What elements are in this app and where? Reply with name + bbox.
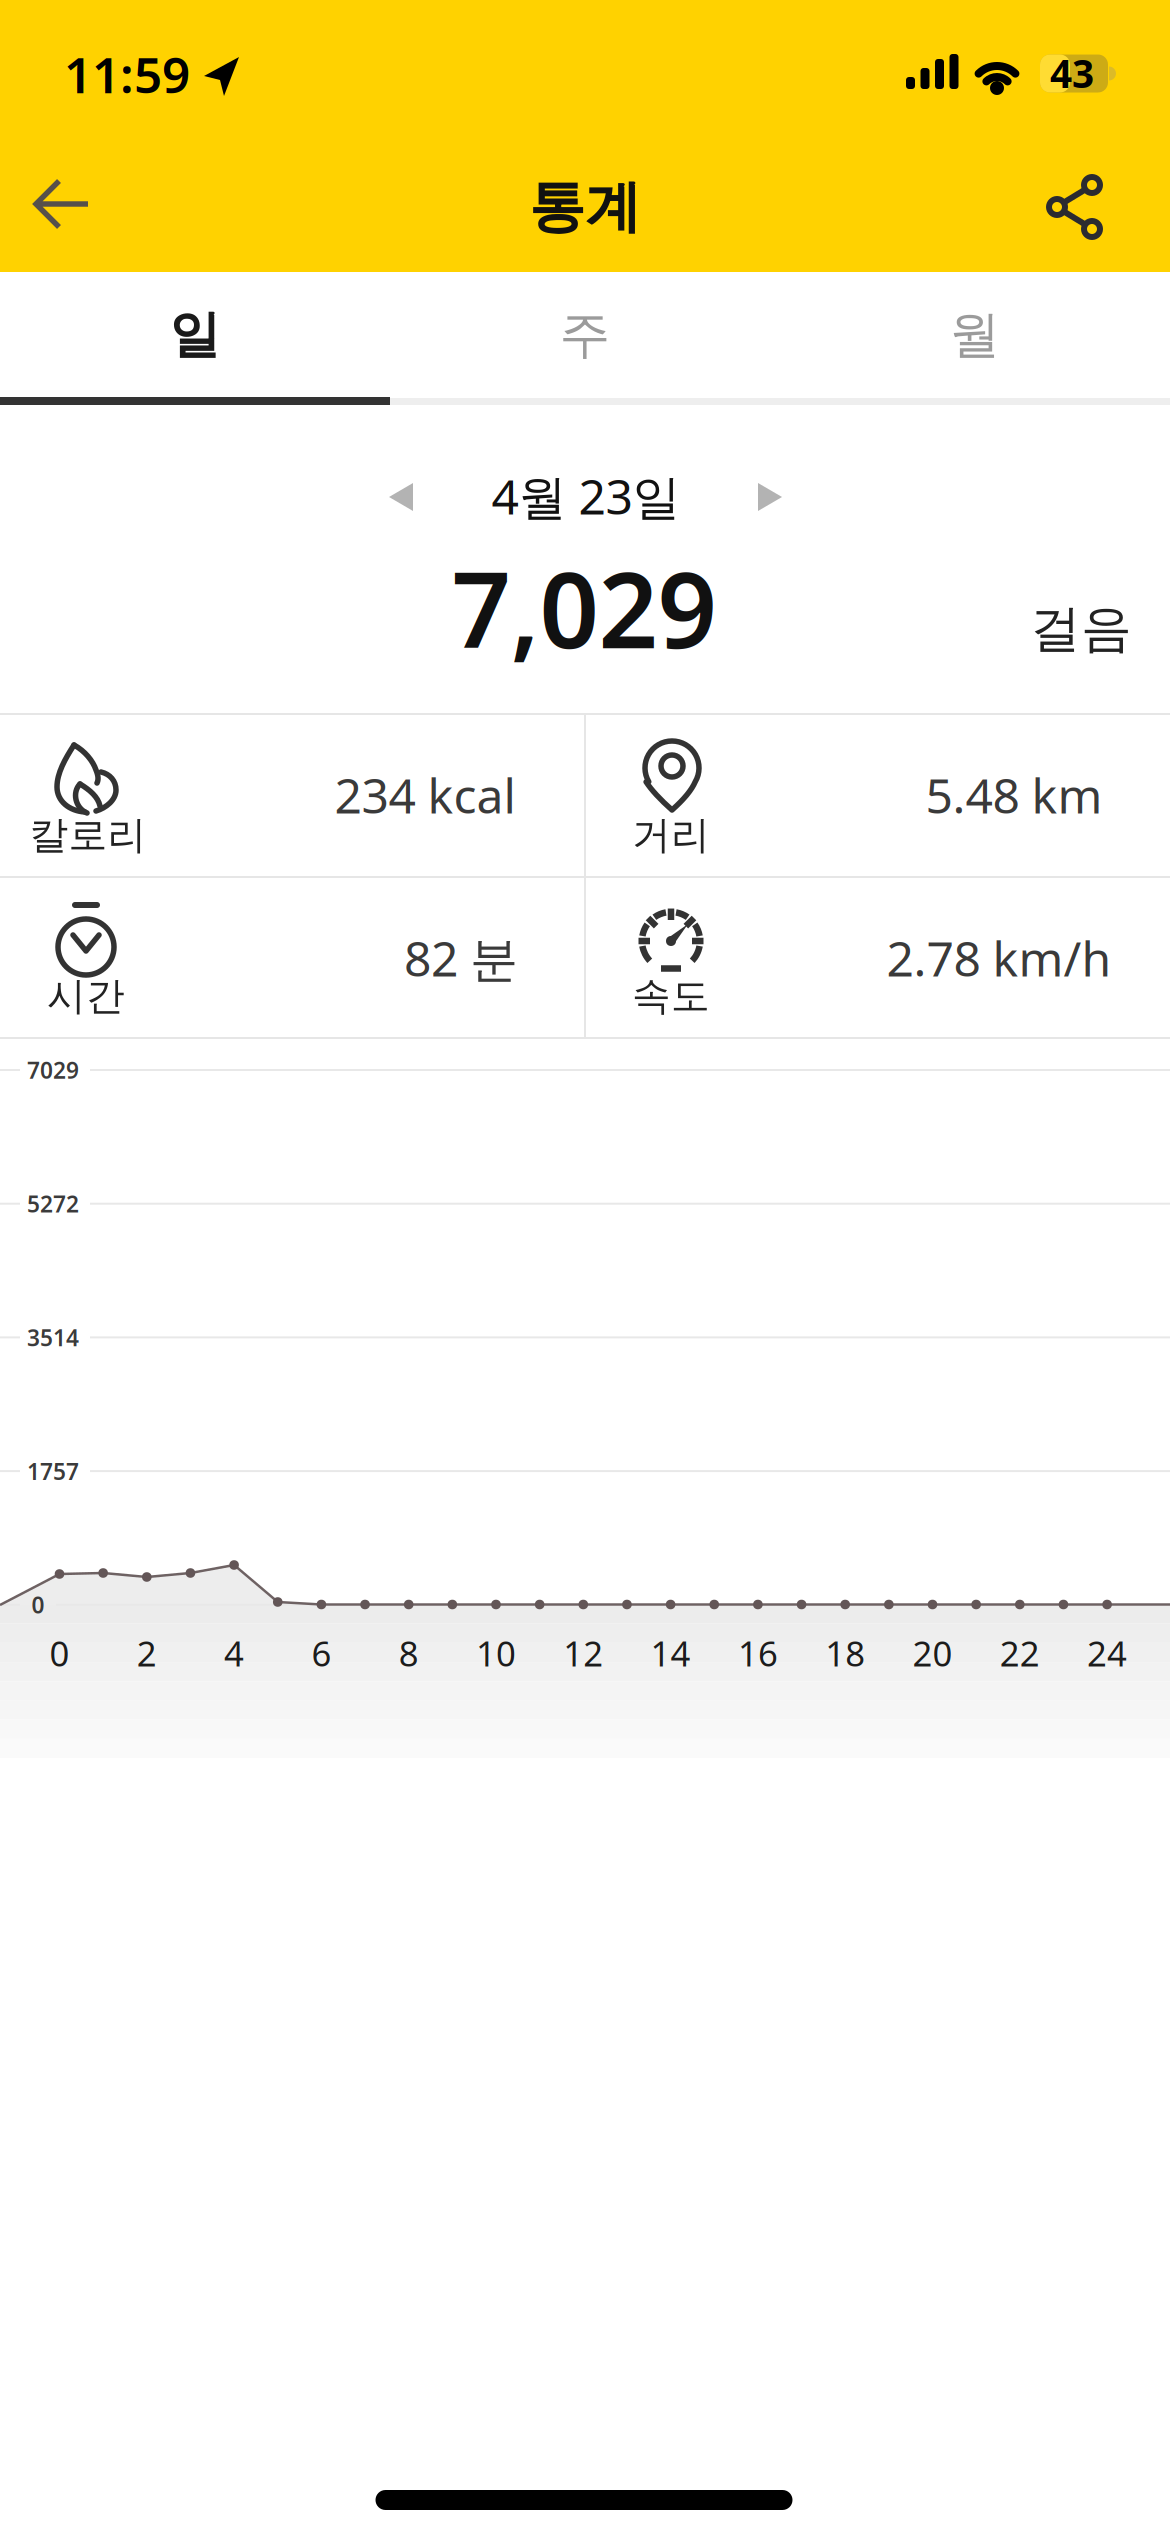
staticText: 7029 — [27, 1055, 79, 1085]
staticText: 주 — [559, 304, 610, 366]
button[interactable]: 월 — [780, 272, 1170, 398]
staticText: 0 — [31, 1590, 44, 1620]
staticText: 2.78 km/h — [886, 926, 1111, 990]
staticText: 14 — [651, 1630, 691, 1676]
staticText: 4 — [224, 1630, 244, 1676]
staticText: 6 — [311, 1630, 331, 1676]
staticText: 234 kcal — [334, 763, 515, 827]
staticText: 10 — [476, 1630, 516, 1676]
staticText: 43 — [1050, 47, 1094, 99]
button[interactable]: 주 — [390, 272, 780, 398]
staticText: 속도 — [632, 972, 710, 1020]
staticText: 2 — [137, 1630, 157, 1676]
staticText: 일 — [169, 304, 220, 366]
staticText: 걸음 — [1030, 598, 1132, 660]
staticText: 통계 — [529, 173, 641, 241]
staticText: 거리 — [632, 811, 710, 859]
staticText: 82 분 — [404, 926, 518, 990]
staticText: 20 — [912, 1630, 952, 1676]
staticText: 0 — [49, 1630, 69, 1676]
staticText: 5272 — [27, 1189, 79, 1219]
staticText: 4월 23일 — [491, 464, 680, 528]
staticText: 1757 — [27, 1456, 79, 1486]
staticText: 8 — [399, 1630, 419, 1676]
staticText: 7,029 — [451, 539, 716, 677]
staticText: 22 — [1000, 1630, 1040, 1676]
staticText: 11:59 — [64, 41, 190, 107]
staticText: 월 — [949, 304, 1000, 366]
button[interactable]: Next day — [756, 481, 784, 513]
staticText: 3514 — [27, 1322, 79, 1352]
button[interactable]: Share — [1040, 168, 1108, 246]
button[interactable]: 일 — [0, 272, 390, 398]
staticText: 24 — [1087, 1630, 1127, 1676]
staticText: 12 — [563, 1630, 603, 1676]
staticText: 칼로리 — [29, 811, 146, 859]
staticText: 16 — [738, 1630, 778, 1676]
staticText: 18 — [825, 1630, 865, 1676]
button[interactable]: Back — [26, 172, 98, 236]
staticText: 시간 — [47, 972, 125, 1020]
staticText: 5.48 km — [925, 763, 1102, 827]
button[interactable]: Previous day — [387, 481, 415, 513]
